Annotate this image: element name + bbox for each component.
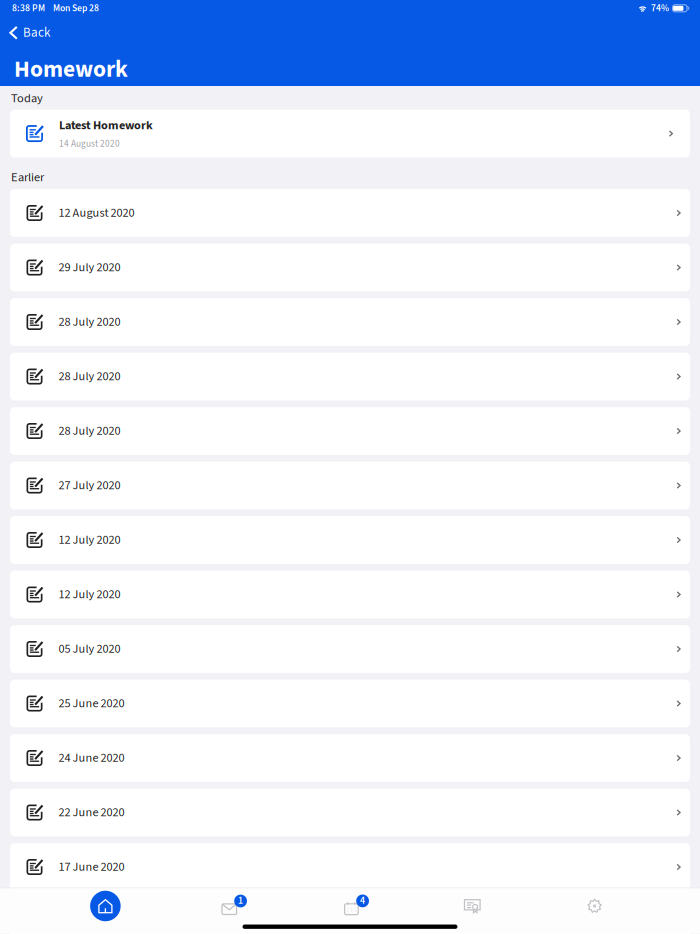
staticText: Back — [23, 23, 50, 42]
staticText: 12 July 2020 — [58, 586, 120, 603]
staticText: 28 July 2020 — [58, 313, 120, 331]
staticText: 29 July 2020 — [58, 259, 120, 276]
button[interactable]: Calendar — [289, 887, 411, 924]
staticText: 4 — [360, 894, 365, 908]
button[interactable]: 28 July 2020 — [10, 407, 690, 455]
staticText: 25 June 2020 — [58, 695, 124, 712]
button[interactable]: Home — [44, 887, 167, 924]
button[interactable]: Back — [0, 22, 58, 44]
staticText: 8:38 PM — [12, 1, 45, 15]
button[interactable]: 15 June 2020 — [10, 898, 690, 934]
staticText: 12 August 2020 — [58, 204, 134, 222]
button[interactable]: 24 June 2020 — [10, 734, 690, 782]
button[interactable]: 17 June 2020 — [10, 843, 690, 891]
staticText: 22 June 2020 — [58, 804, 124, 821]
staticText: 28 July 2020 — [58, 368, 120, 385]
staticText: 74% — [651, 1, 669, 15]
staticText: 1 — [238, 894, 243, 908]
button[interactable]: 25 June 2020 — [10, 680, 690, 727]
button[interactable]: 05 July 2020 — [10, 625, 690, 673]
staticText: Today — [11, 90, 43, 107]
button[interactable]: 28 July 2020 — [10, 353, 690, 400]
button[interactable]: Latest Homework — [10, 110, 690, 157]
button[interactable]: 12 July 2020 — [10, 516, 690, 564]
button[interactable]: 29 July 2020 — [10, 244, 690, 291]
staticText: 28 July 2020 — [58, 422, 120, 440]
button[interactable]: 22 June 2020 — [10, 789, 690, 836]
button[interactable]: 28 July 2020 — [10, 298, 690, 346]
button[interactable]: 12 August 2020 — [10, 189, 690, 237]
staticText: 27 July 2020 — [58, 477, 120, 494]
staticText: 24 June 2020 — [58, 749, 124, 767]
staticText: Homework — [14, 53, 128, 86]
staticText: Latest Homework — [59, 117, 153, 134]
staticText: 12 July 2020 — [58, 531, 120, 549]
button[interactable]: Messages — [167, 887, 289, 924]
staticText: 15 June 2020 — [58, 913, 124, 930]
button[interactable]: Settings — [533, 887, 656, 924]
staticText: Mon Sep 28 — [53, 1, 99, 15]
staticText: Earlier — [11, 168, 44, 186]
button[interactable]: 12 July 2020 — [10, 571, 690, 618]
staticText: 17 June 2020 — [58, 858, 124, 876]
button[interactable]: 27 July 2020 — [10, 462, 690, 509]
staticText: 05 July 2020 — [58, 640, 120, 658]
staticText: 14 August 2020 — [59, 137, 120, 150]
button[interactable]: Results — [411, 887, 533, 924]
